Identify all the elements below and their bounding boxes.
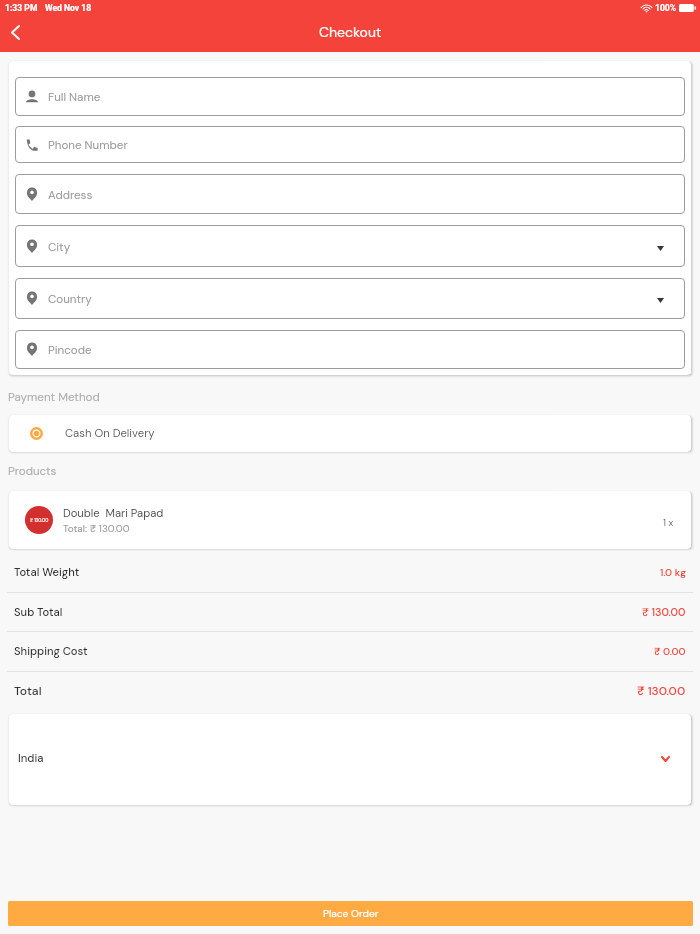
staticText: 100% bbox=[655, 3, 677, 13]
staticText: ₹ 0.00 bbox=[654, 645, 686, 658]
button[interactable]: Country bbox=[15, 278, 685, 319]
staticText: Cash On Delivery bbox=[65, 426, 155, 441]
staticText: ₹ 130.00 bbox=[637, 683, 686, 699]
staticText: Shipping Cost bbox=[14, 644, 88, 659]
button[interactable]: Total bbox=[0, 672, 700, 710]
staticText: City bbox=[48, 239, 71, 254]
staticText: Checkout bbox=[319, 23, 382, 41]
button[interactable]: Total Weight bbox=[0, 553, 700, 592]
staticText: Products bbox=[8, 463, 57, 478]
staticText: ₹ 130.00 bbox=[30, 517, 49, 523]
staticText: ₹ 130.00 bbox=[642, 605, 686, 619]
button[interactable]: India bbox=[9, 714, 691, 805]
button[interactable]: Place Order bbox=[8, 901, 693, 926]
staticText: Payment Method bbox=[8, 389, 100, 404]
button[interactable]: ₹ 130.00 bbox=[9, 491, 691, 549]
button[interactable]: Back bbox=[4, 21, 27, 44]
staticText: 1:33 PM bbox=[5, 3, 38, 13]
button[interactable]: Shipping Cost bbox=[0, 632, 700, 671]
staticText: Total bbox=[14, 683, 42, 699]
staticText: Country bbox=[48, 291, 92, 306]
button[interactable]: Sub Total bbox=[0, 593, 700, 631]
staticText: 1 x bbox=[663, 517, 674, 529]
staticText: 1.0 kg bbox=[660, 566, 686, 579]
staticText: Full Name bbox=[48, 89, 101, 104]
button[interactable]: Phone Number bbox=[15, 126, 685, 163]
staticText: Double Mari Papad bbox=[63, 506, 164, 521]
staticText: Pincode bbox=[48, 342, 92, 357]
button[interactable]: Address bbox=[15, 174, 685, 214]
staticText: Wed Nov 18 bbox=[45, 3, 92, 13]
staticText: Place Order bbox=[323, 907, 379, 920]
button[interactable]: City bbox=[15, 225, 685, 267]
staticText: India bbox=[18, 751, 44, 766]
staticText: Total: ₹ 130.00 bbox=[63, 522, 130, 535]
staticText: Sub Total bbox=[14, 605, 63, 620]
button[interactable]: Pincode bbox=[15, 330, 685, 369]
button[interactable]: Cash On Delivery bbox=[9, 415, 691, 452]
staticText: Address bbox=[48, 187, 93, 202]
staticText: Total Weight bbox=[14, 565, 80, 580]
staticText: Phone Number bbox=[48, 137, 128, 152]
button[interactable]: Full Name bbox=[15, 77, 685, 116]
